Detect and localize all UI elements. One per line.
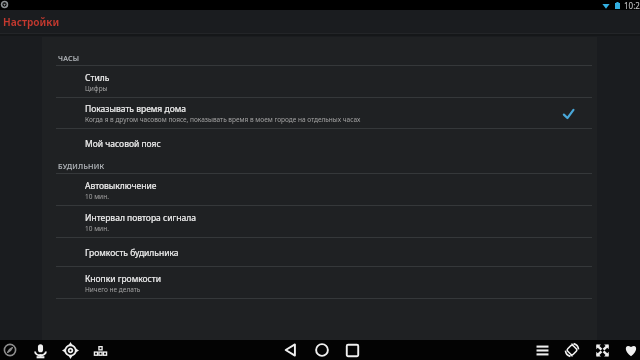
button[interactable]: Recents bbox=[342, 340, 362, 360]
staticText: Когда я в другом часовом поясе, показыва… bbox=[85, 115, 361, 124]
button[interactable]: Fullscreen bbox=[592, 340, 612, 360]
staticText: 10 мин. bbox=[85, 192, 109, 201]
staticText: Автовыключение bbox=[85, 180, 157, 192]
staticText: БУДИЛЬНИК bbox=[58, 161, 105, 171]
button[interactable]: Back bbox=[281, 340, 301, 360]
staticText: Интервал повтора сигнала bbox=[85, 212, 196, 224]
staticText: Стиль bbox=[85, 72, 110, 84]
button[interactable]: Screenshot bbox=[0, 340, 20, 360]
staticText: Громкость будильника bbox=[85, 247, 179, 259]
button[interactable]: Home bbox=[312, 340, 332, 360]
button[interactable]: Favorite bbox=[621, 340, 640, 360]
staticText: Ничего не делать bbox=[85, 285, 141, 294]
button[interactable]: Кнопки громкости bbox=[42, 267, 597, 299]
button[interactable]: Location bbox=[60, 340, 80, 360]
button[interactable]: Menu bbox=[532, 340, 552, 360]
button[interactable]: Apps bbox=[90, 340, 110, 360]
button[interactable]: Интервал повтора сигнала bbox=[42, 206, 597, 238]
staticText: Мой часовой пояс bbox=[85, 138, 161, 150]
staticText: Цифры bbox=[85, 84, 108, 93]
button[interactable]: Стиль bbox=[42, 66, 597, 98]
staticText: Кнопки громкости bbox=[85, 273, 162, 285]
button[interactable]: Автовыключение bbox=[42, 174, 597, 206]
button[interactable]: Громкость будильника bbox=[42, 238, 597, 267]
staticText: ЧАСЫ bbox=[58, 53, 80, 63]
staticText: Настройки bbox=[3, 15, 60, 29]
button[interactable]: Показывать время дома bbox=[42, 98, 597, 129]
staticText: 10:2 bbox=[624, 0, 640, 10]
button[interactable]: Мой часовой пояс bbox=[42, 129, 597, 158]
button[interactable]: Rotate bbox=[562, 340, 582, 360]
button[interactable]: Voice search bbox=[30, 340, 50, 360]
staticText: Показывать время дома bbox=[85, 103, 186, 115]
staticText: 10 мин. bbox=[85, 224, 109, 233]
